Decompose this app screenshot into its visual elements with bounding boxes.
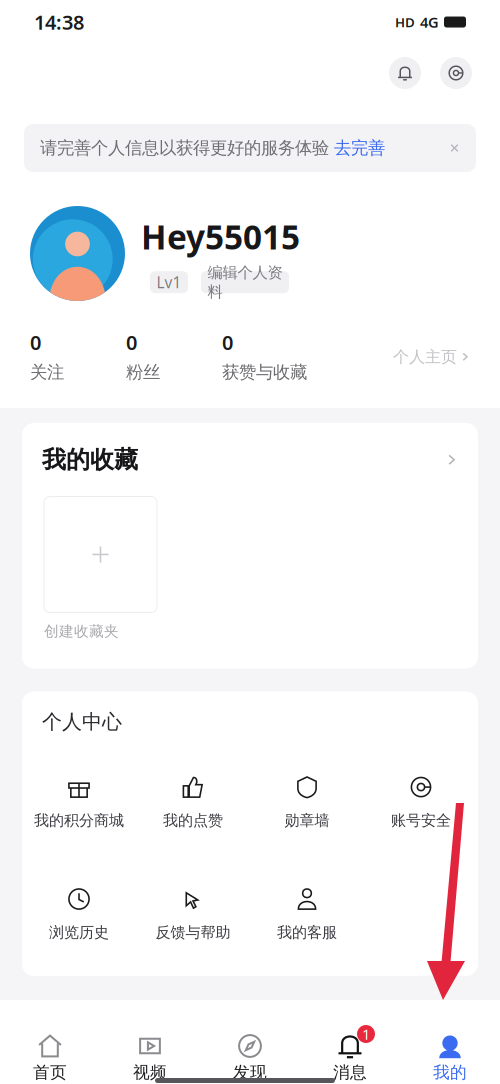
button[interactable]: 发现 xyxy=(200,1032,300,1083)
button[interactable]: Profile photo xyxy=(30,206,125,301)
button[interactable]: 个人主页 xyxy=(393,347,470,367)
staticText: 0 xyxy=(126,329,137,356)
staticText: 我的收藏 xyxy=(42,445,138,474)
staticText: 4G xyxy=(420,12,439,32)
button[interactable]: 1 xyxy=(300,1032,400,1083)
button[interactable]: 浏览历史 xyxy=(22,886,136,942)
button[interactable]: 我的客服 xyxy=(250,886,364,942)
staticText: 视频 xyxy=(133,1062,167,1083)
staticText: 创建收藏夹 xyxy=(44,622,119,640)
staticText: Hey55015 xyxy=(141,214,300,259)
button[interactable]: 反馈与帮助 xyxy=(136,886,250,942)
button[interactable]: 创建收藏夹 xyxy=(44,496,157,640)
staticText: 去完善 xyxy=(329,137,385,159)
staticText: 0 xyxy=(30,329,41,356)
staticText: Lv1 xyxy=(156,272,181,293)
button[interactable]: Lv1 xyxy=(150,271,188,293)
staticText: 我的点赞 xyxy=(163,811,223,830)
staticText: 反馈与帮助 xyxy=(155,923,230,942)
staticText: 0 xyxy=(222,329,233,356)
button[interactable]: 我的点赞 xyxy=(136,774,250,830)
button[interactable]: 请完善个人信息以获得更好的服务体验 xyxy=(24,124,476,172)
staticText: 我的积分商城 xyxy=(34,811,124,830)
staticText: HD xyxy=(395,13,415,31)
button[interactable]: 我的积分商城 xyxy=(22,774,136,830)
staticText: 个人中心 xyxy=(42,709,122,734)
button[interactable]: 我的 xyxy=(400,1032,500,1083)
staticText: 消息 xyxy=(333,1062,367,1083)
staticText: 我的 xyxy=(433,1062,467,1083)
button[interactable]: 勋章墙 xyxy=(250,774,364,830)
staticText: 请完善个人信息以获得更好的服务体验 xyxy=(40,137,329,159)
staticText: 我的客服 xyxy=(277,923,337,942)
button[interactable]: 0 xyxy=(126,329,160,383)
button[interactable]: 0 xyxy=(222,329,307,383)
staticText: 浏览历史 xyxy=(49,923,109,942)
button[interactable]: 编辑个人资料 xyxy=(201,271,289,293)
button[interactable]: 0 xyxy=(30,329,64,383)
button[interactable]: 首页 xyxy=(0,1032,100,1083)
staticText: 首页 xyxy=(33,1062,67,1083)
staticText: 个人主页 xyxy=(393,347,457,367)
staticText: 关注 xyxy=(30,362,64,383)
staticText: 14:38 xyxy=(34,9,84,35)
staticText: 获赞与收藏 xyxy=(222,362,307,383)
staticText: 发现 xyxy=(233,1062,267,1083)
button[interactable]: 我的收藏 xyxy=(42,445,458,474)
staticText: 编辑个人资料 xyxy=(207,263,282,301)
button[interactable]: Settings xyxy=(440,57,472,89)
staticText: 勋章墙 xyxy=(284,811,329,830)
staticText: 粉丝 xyxy=(126,362,160,383)
staticText: 账号安全 xyxy=(391,811,451,830)
button[interactable]: Notifications xyxy=(389,57,421,89)
button[interactable]: 视频 xyxy=(100,1032,200,1083)
button[interactable]: 账号安全 xyxy=(364,774,478,830)
staticText: 1 xyxy=(362,1024,370,1044)
